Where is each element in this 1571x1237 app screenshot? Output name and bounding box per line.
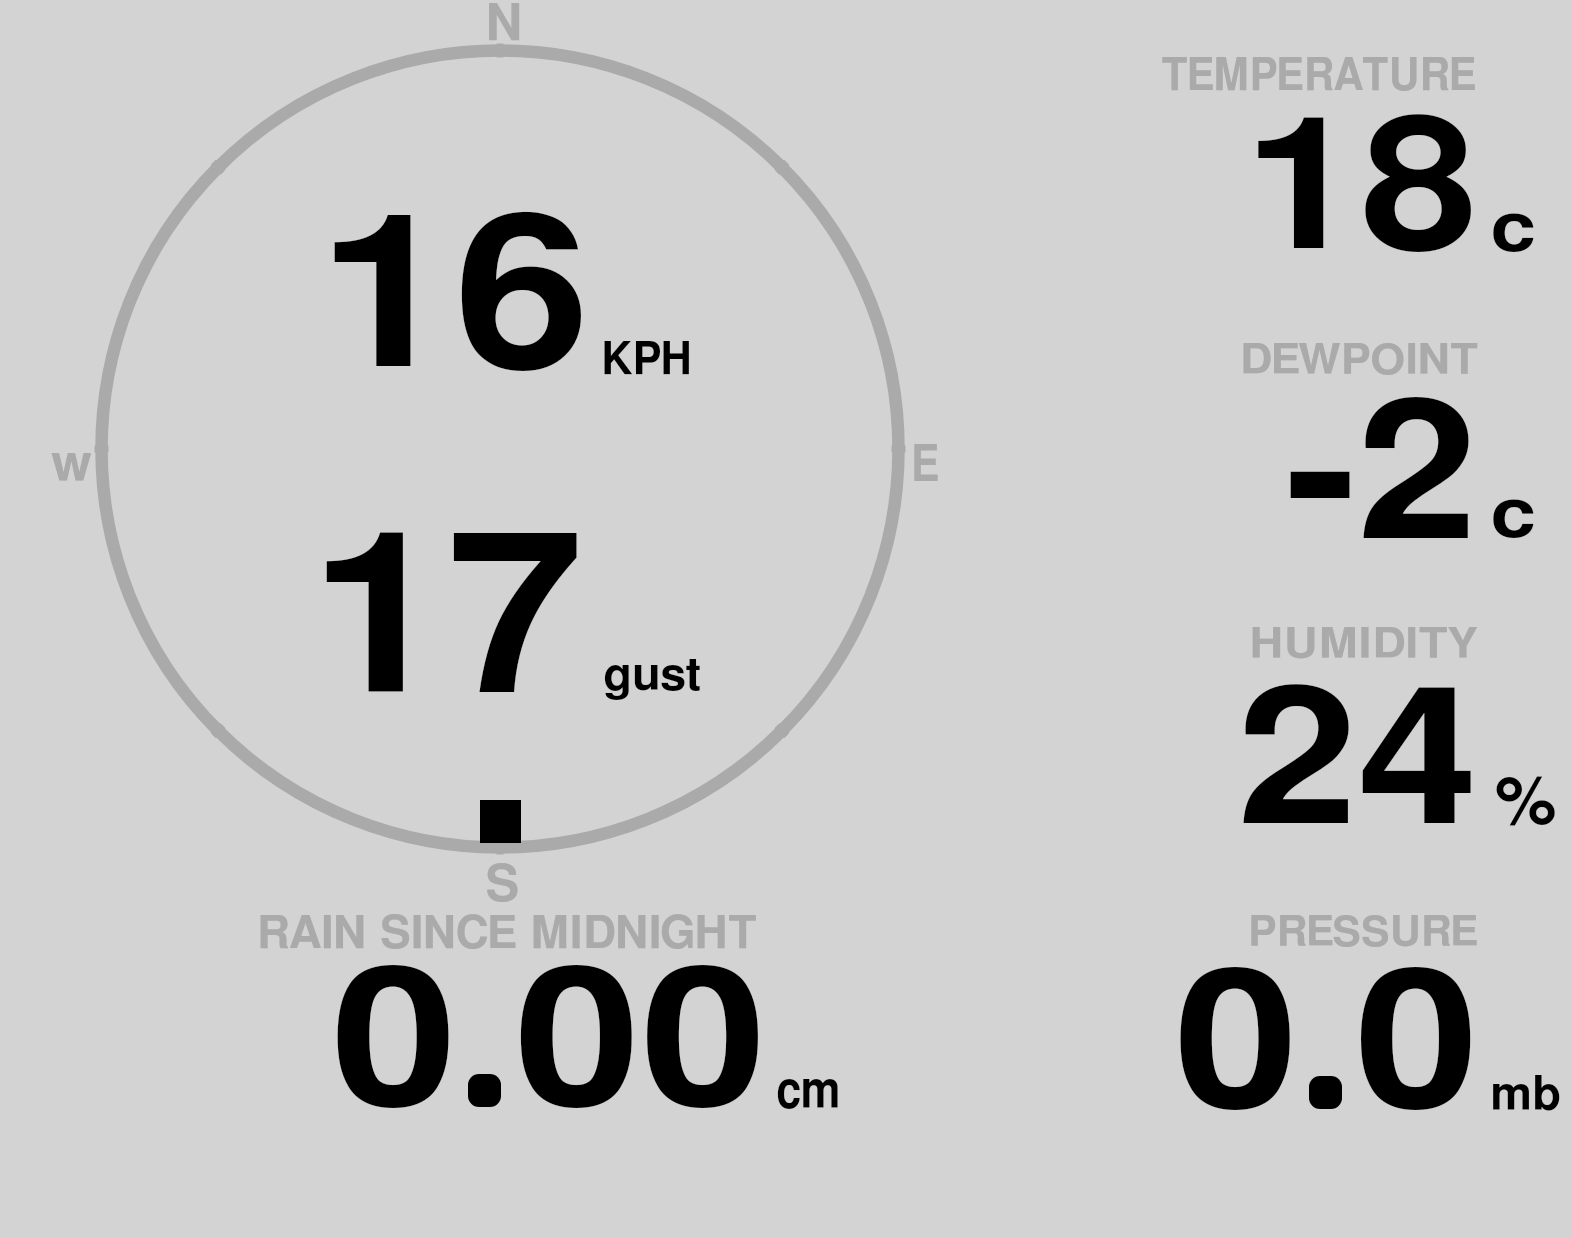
staticText: 18 bbox=[1244, 101, 1477, 285]
staticText: -2 bbox=[1285, 383, 1478, 577]
staticText: KPH bbox=[601, 337, 693, 383]
staticText: 17 bbox=[310, 514, 583, 737]
staticText: S bbox=[485, 860, 520, 911]
staticText: w bbox=[51, 440, 92, 491]
staticText: HUMIDITY bbox=[1249, 624, 1479, 666]
staticText: 0.0 bbox=[1174, 953, 1480, 1144]
staticText: PRESSURE bbox=[1248, 913, 1479, 954]
staticText: N bbox=[485, 0, 524, 50]
staticText: 16 bbox=[318, 195, 591, 409]
staticText: mb bbox=[1490, 1072, 1562, 1119]
staticText: 24 bbox=[1237, 670, 1479, 861]
staticText: RAIN SINCE MIDNIGHT bbox=[257, 912, 757, 957]
staticText: cm bbox=[776, 1066, 841, 1118]
staticText: 0.00 bbox=[331, 951, 768, 1142]
other: Wind direction compass bbox=[0, 0, 1571, 1237]
staticText: DEWPOINT bbox=[1240, 340, 1479, 382]
staticText: % bbox=[1495, 770, 1557, 838]
staticText: gust bbox=[603, 653, 702, 699]
staticText: c bbox=[1490, 196, 1537, 263]
staticText: c bbox=[1490, 482, 1537, 549]
staticText: TEMPERATURE bbox=[1161, 54, 1477, 99]
staticText: E bbox=[911, 441, 940, 491]
